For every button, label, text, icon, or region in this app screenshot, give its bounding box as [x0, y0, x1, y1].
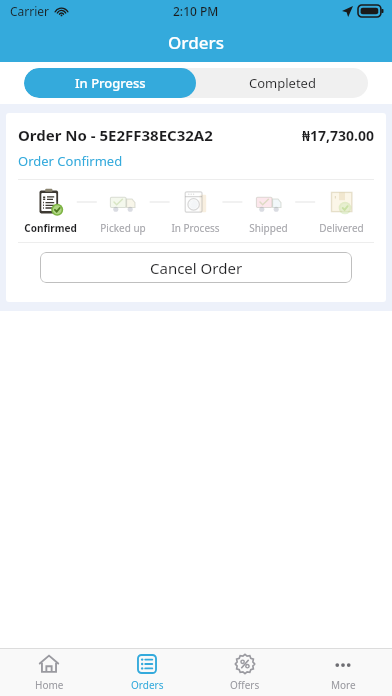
staticText: In Progress [75, 74, 146, 92]
button[interactable]: Offers [196, 649, 294, 696]
staticText: More [331, 678, 356, 692]
staticText: Offers [230, 678, 260, 692]
staticText: Carrier [10, 3, 50, 19]
button[interactable]: In Progress [24, 68, 196, 98]
staticText: 2:10 PM [173, 3, 219, 19]
staticText: In Process [171, 221, 220, 235]
staticText: ₦17,730.00 [302, 126, 374, 145]
button[interactable]: Order No - 5E2FF38EC32A2 [6, 113, 386, 302]
staticText: Cancel Order [150, 258, 243, 278]
button[interactable]: Orders [98, 649, 196, 696]
staticText: Order No - 5E2FF38EC32A2 [18, 125, 213, 145]
button[interactable]: Home [0, 649, 98, 696]
staticText: Completed [249, 74, 316, 92]
staticText: Home [35, 678, 64, 692]
staticText: Orders [131, 678, 164, 692]
staticText: Order Confirmed [18, 152, 123, 170]
staticText: Orders [168, 31, 224, 54]
button[interactable]: More [294, 649, 392, 696]
button[interactable]: Completed [196, 68, 368, 98]
staticText: Picked up [100, 221, 146, 235]
staticText: Delivered [319, 221, 364, 235]
staticText: Shipped [249, 221, 288, 235]
button[interactable]: Cancel Order [40, 252, 352, 283]
staticText: Confirmed [24, 221, 77, 235]
